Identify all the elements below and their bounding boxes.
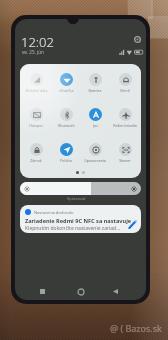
button[interactable]: Poloha [52,143,80,163]
staticText: Skener [119,158,131,163]
staticText: Baterka [88,88,102,93]
staticText: Stlmiť [120,88,130,93]
staticText: Bluetooth [58,123,75,128]
staticText: Spravovať [67,196,86,201]
button[interactable]: Back [106,283,124,300]
button[interactable]: Recents [33,283,51,300]
button[interactable]: Bluetooth [52,108,80,128]
staticText: Nastavenia Androidu [34,210,74,215]
button[interactable]: Nastavenia Androidu [20,205,141,233]
button[interactable]: Režim lietadlo [111,108,139,128]
button[interactable]: Settings [131,33,144,46]
staticText: 12:02 [21,33,54,51]
staticText: ve. 25. jún [22,49,44,55]
button[interactable]: Baterka [81,73,109,93]
staticText: Poloha [60,158,72,163]
staticText: Hotspot [29,123,43,128]
staticText: @ ( Bazos.sk [110,322,162,334]
button[interactable]: Skener [111,143,139,163]
staticText: Jas [93,123,98,128]
button[interactable]: Jas [81,108,109,128]
staticText: Zámok [30,158,42,163]
staticText: Upozornenia [84,158,106,163]
staticText: Mobilné dáta [25,88,48,93]
button[interactable]: Home [72,283,90,300]
button[interactable]: dlhwifi.a [52,73,80,93]
button[interactable]: Stlmiť [111,73,139,93]
staticText: Zariadenie Redmi 9C NFC sa nastavuje [25,217,132,225]
button[interactable]: Upozornenia [81,143,109,163]
staticText: Klepnutím dokončíte nastavenie zariad… [25,225,121,232]
staticText: dlhwifi.a [59,88,74,93]
button[interactable]: Mobilné dáta [22,73,50,93]
staticText: Režim lietadlo [113,123,137,128]
button[interactable]: Hotspot [22,108,50,128]
button[interactable]: Brightness [20,182,141,195]
button[interactable]: Zámok [22,143,50,163]
